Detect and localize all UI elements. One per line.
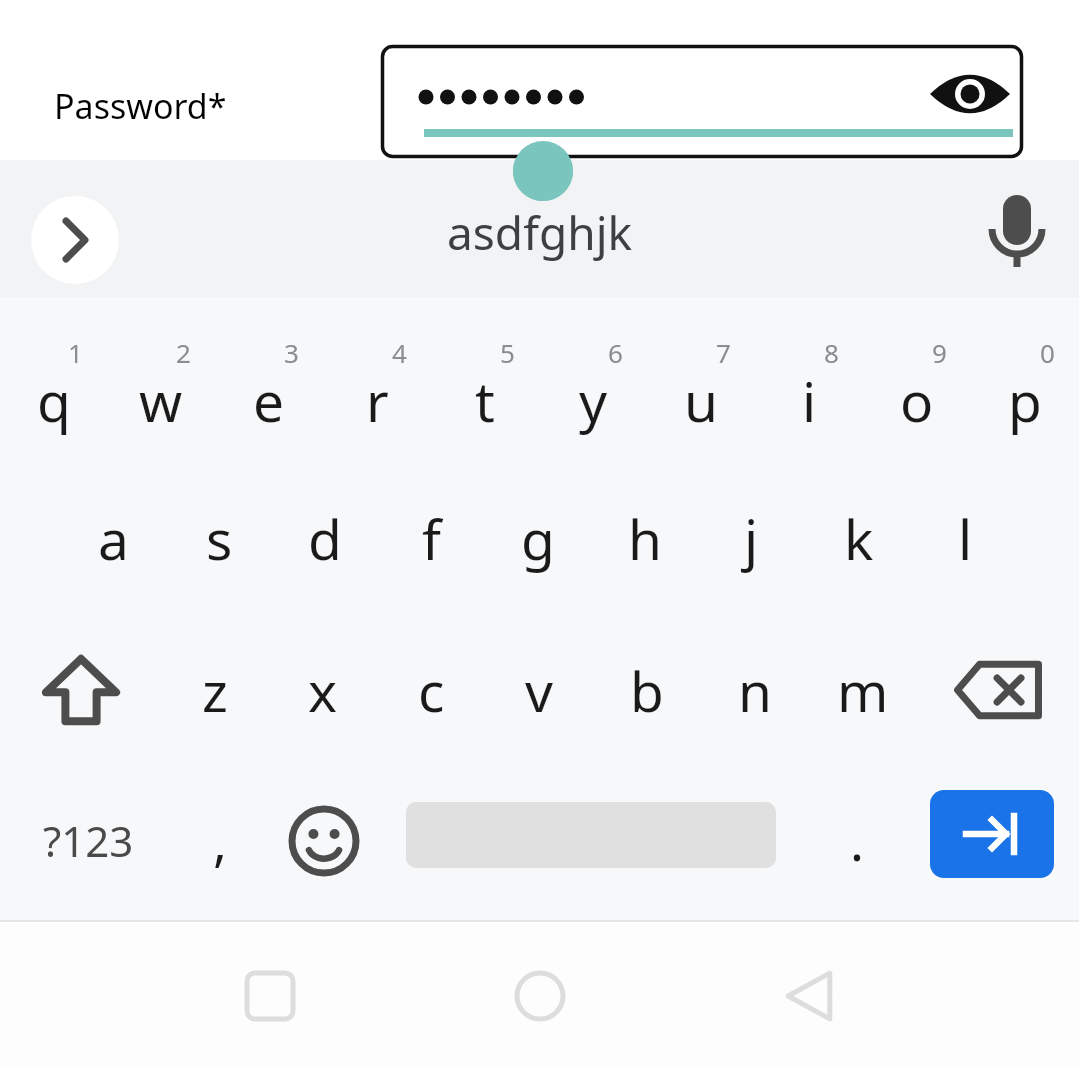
staticText: l	[958, 501, 973, 576]
staticText: v	[525, 653, 553, 728]
staticText: ?123	[43, 812, 134, 869]
button[interactable]: z	[161, 635, 269, 745]
staticText: 5	[500, 335, 515, 370]
button[interactable]: 4	[323, 335, 431, 445]
button[interactable]: x	[269, 635, 377, 745]
button[interactable]: Back	[780, 966, 840, 1026]
staticText: u	[684, 363, 718, 438]
button[interactable]: n	[701, 635, 809, 745]
button[interactable]: Emoji	[278, 795, 370, 887]
button[interactable]: Shift	[0, 635, 161, 745]
button[interactable]: v	[485, 635, 593, 745]
button[interactable]: 1	[0, 335, 107, 445]
staticText: b	[630, 653, 664, 728]
staticText: 7	[716, 335, 731, 370]
button[interactable]: 8	[755, 335, 863, 445]
staticText: 8	[824, 335, 839, 370]
staticText: j	[744, 501, 759, 576]
button[interactable]: 5	[431, 335, 539, 445]
staticText: a	[98, 501, 129, 576]
button[interactable]: f	[378, 483, 484, 593]
button[interactable]: asdfghjk	[447, 201, 633, 264]
button[interactable]: s	[166, 483, 272, 593]
button[interactable]: Show password	[381, 45, 1023, 158]
staticText: 4	[392, 335, 407, 370]
button[interactable]: 0	[971, 335, 1079, 445]
button[interactable]: Voice input	[977, 189, 1057, 269]
staticText: k	[844, 501, 874, 576]
staticText: y	[579, 363, 608, 438]
button[interactable]: c	[377, 635, 485, 745]
staticText: r	[366, 363, 389, 438]
staticText: ,	[213, 805, 227, 876]
button[interactable]: h	[591, 483, 698, 593]
button[interactable]: Home	[510, 966, 570, 1026]
staticText: e	[253, 363, 285, 438]
button[interactable]: a	[60, 483, 166, 593]
button[interactable]: 9	[863, 335, 971, 445]
button[interactable]: 6	[539, 335, 647, 445]
button[interactable]: 7	[647, 335, 755, 445]
button[interactable]: b	[593, 635, 701, 745]
staticText: 3	[284, 335, 299, 370]
button[interactable]: ?123	[28, 785, 148, 895]
staticText: 2	[176, 335, 191, 370]
staticText: c	[418, 653, 445, 728]
button[interactable]: d	[272, 483, 378, 593]
staticText: 1	[68, 335, 83, 370]
button[interactable]: k	[805, 483, 912, 593]
staticText: d	[308, 501, 342, 576]
staticText: i	[802, 363, 817, 438]
staticText: 6	[608, 335, 623, 370]
staticText: w	[139, 363, 183, 438]
staticText: z	[202, 653, 228, 728]
button[interactable]: Show password	[939, 63, 1001, 125]
button[interactable]: Recents	[240, 966, 300, 1026]
button[interactable]: 3	[215, 335, 323, 445]
button[interactable]: Next	[930, 790, 1054, 878]
button[interactable]: j	[698, 483, 805, 593]
staticText: t	[475, 363, 495, 438]
staticText: m	[837, 653, 889, 728]
button[interactable]: ,	[170, 785, 270, 895]
button[interactable]: Backspace	[917, 635, 1079, 745]
staticText: q	[37, 363, 71, 438]
staticText: h	[628, 501, 662, 576]
button[interactable]: l	[912, 483, 1019, 593]
staticText: .	[850, 805, 864, 876]
staticText: 0	[1040, 335, 1055, 370]
staticText: asdfghjk	[447, 201, 633, 264]
staticText: f	[422, 501, 441, 576]
staticText: Password*	[54, 83, 227, 129]
staticText: p	[1008, 363, 1042, 438]
button[interactable]: More suggestions	[31, 196, 119, 284]
staticText: 9	[932, 335, 947, 370]
staticText: s	[206, 501, 233, 576]
staticText: x	[308, 653, 338, 728]
staticText: n	[738, 653, 772, 728]
button[interactable]: .	[812, 785, 902, 895]
button[interactable]: 2	[107, 335, 215, 445]
button[interactable]: m	[809, 635, 917, 745]
staticText: o	[900, 363, 934, 438]
staticText: g	[521, 501, 555, 576]
button[interactable]: g	[484, 483, 591, 593]
